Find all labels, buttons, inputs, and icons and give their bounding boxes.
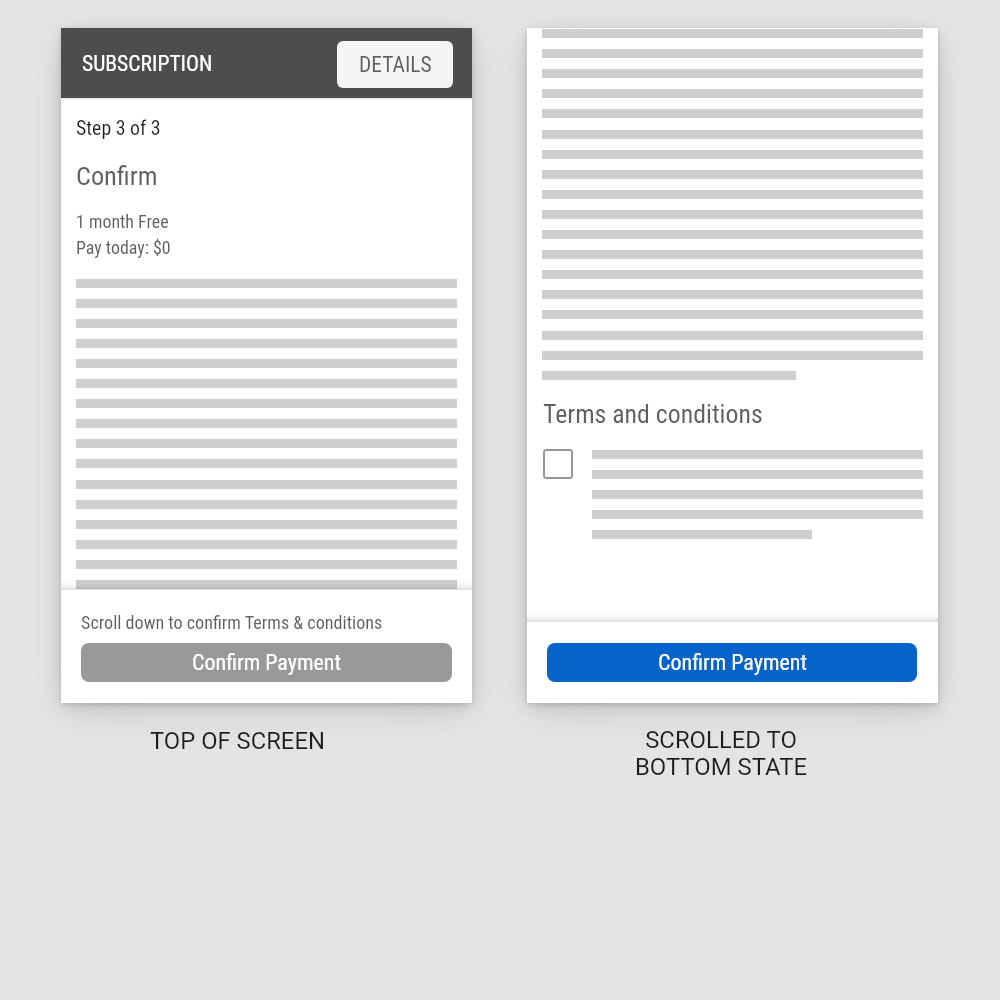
button[interactable]: Confirm Payment: [81, 643, 452, 682]
staticText: Confirm Payment: [658, 650, 807, 676]
staticText: Terms and conditions: [543, 399, 763, 429]
staticText: Step 3 of 3: [76, 117, 161, 140]
button[interactable]: Confirm Payment: [547, 643, 917, 682]
staticText: SCROLLED TO BOTTOM STATE: [610, 726, 832, 781]
staticText: Confirm Payment: [192, 650, 341, 676]
button[interactable]: Accept terms and conditions: [543, 449, 573, 479]
staticText: 1 month Free: [76, 211, 169, 232]
staticText: SUBSCRIPTION: [82, 51, 213, 76]
staticText: DETAILS: [359, 52, 432, 77]
staticText: Scroll down to confirm Terms & condition…: [81, 612, 383, 633]
staticText: Pay today: $0: [76, 237, 171, 258]
staticText: TOP OF SCREEN: [150, 727, 325, 755]
button[interactable]: DETAILS: [337, 41, 453, 88]
staticText: Confirm: [76, 161, 158, 192]
